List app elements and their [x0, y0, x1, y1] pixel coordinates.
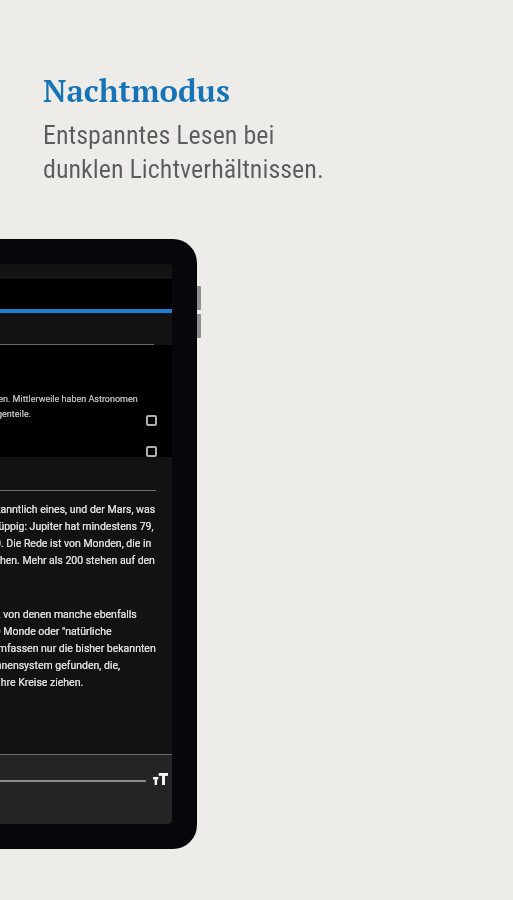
- staticText: mehr als 850 Monde oder "natürliche: [0, 625, 112, 637]
- staticText: Die Erde hat bekanntlich eines, und der …: [0, 503, 156, 515]
- staticText: hat wirklich es üppig: Jupiter hat minde…: [0, 520, 154, 532]
- staticText: ihre Gegenteile.: [0, 409, 32, 420]
- staticText: von einzigen. Mittlerweile haben Astrono…: [0, 394, 138, 405]
- staticText: Nachtmodus: [43, 70, 230, 111]
- staticText: Bezeichnungen umfassen nur die bisher be…: [0, 642, 156, 654]
- staticText: Dazu kommen hinzu ein, von denen manche …: [0, 608, 137, 620]
- staticText: Entspanntes Lesen bei dunklen Lichtverhä…: [43, 120, 324, 184]
- staticText: Saturn nicht als 40. Die Rede ist von Mo…: [0, 537, 152, 549]
- staticText: ihren Bahnen ziehen. Mehr als 200 stehen…: [0, 554, 155, 566]
- staticText: entdeckt wurden, ihre Kreise ziehen.: [0, 676, 84, 688]
- staticText: Objekte im Sonnensystem gefunden, die,: [0, 659, 121, 671]
- other: Text size: [153, 773, 168, 785]
